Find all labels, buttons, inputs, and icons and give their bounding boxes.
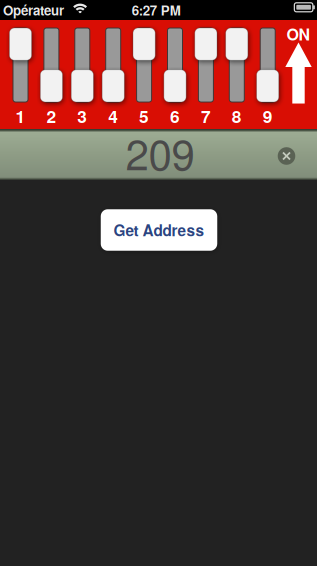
button[interactable]: Switch 2, off [38, 22, 64, 124]
staticText: Get Address [113, 219, 204, 241]
staticText: 9 [263, 104, 273, 128]
staticText: 209 [126, 122, 195, 182]
staticText: Opérateur [3, 0, 64, 20]
staticText: 7 [201, 104, 211, 128]
staticText: 5 [139, 104, 149, 128]
button[interactable]: Switch 3, off [69, 22, 95, 124]
button[interactable]: Switch 7, on [193, 22, 219, 124]
staticText: ON [286, 22, 310, 45]
button[interactable]: Clear [273, 143, 299, 169]
button[interactable]: Switch 1, on [7, 22, 33, 124]
button[interactable]: Switch 5, on [131, 22, 157, 124]
staticText: 8 [232, 104, 242, 128]
staticText: 3 [77, 104, 87, 128]
staticText: 1 [15, 104, 25, 128]
button[interactable]: Switch 4, off [100, 22, 126, 124]
staticText: 6:27 PM [132, 0, 181, 20]
button[interactable]: Switch 9, off [255, 22, 281, 124]
staticText: 6 [170, 104, 180, 128]
staticText: 4 [108, 104, 118, 128]
staticText: 2 [46, 104, 56, 128]
button[interactable]: Switch 8, on [224, 22, 250, 124]
button[interactable]: Get Address [101, 209, 217, 251]
button[interactable]: Switch 6, off [162, 22, 188, 124]
